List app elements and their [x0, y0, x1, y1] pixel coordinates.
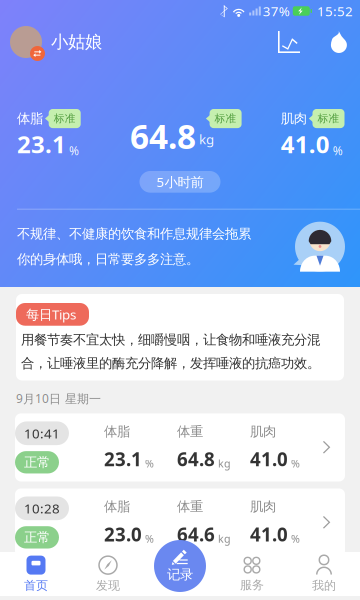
staticText: 标准	[215, 112, 237, 125]
staticText: 小姑娘	[51, 31, 102, 53]
button[interactable]: 数据趋势	[273, 26, 305, 58]
button[interactable]: 10:41	[0, 413, 360, 481]
staticText: 64.6	[177, 522, 215, 547]
staticText: kg	[218, 531, 231, 546]
staticText: 15:52	[317, 2, 353, 20]
staticText: 5小时前	[156, 173, 203, 191]
staticText: 23.1	[17, 128, 66, 160]
staticText: 记录	[167, 566, 193, 583]
button[interactable]: 我的	[288, 552, 360, 596]
staticText: 不规律、不健康的饮食和作息规律会拖累 你的身体哦，日常要多多注意。	[17, 226, 251, 267]
button[interactable]: 切换用户	[10, 26, 42, 58]
button[interactable]: 记录	[154, 540, 206, 592]
staticText: 41.0	[281, 128, 330, 160]
staticText: 正常	[24, 529, 50, 546]
staticText: 9月10日 星期一	[16, 390, 101, 406]
staticText: %	[69, 142, 79, 158]
staticText: %	[145, 456, 154, 471]
staticText: 肌肉	[281, 110, 307, 127]
staticText: 10:41	[24, 424, 60, 442]
staticText: 我的	[312, 578, 336, 593]
staticText: 体脂	[104, 498, 130, 515]
staticText: 肌肉	[250, 423, 276, 440]
staticText: %	[291, 531, 300, 546]
staticText: 服务	[240, 578, 264, 592]
staticText: kg	[218, 456, 231, 471]
staticText: 标准	[317, 112, 339, 125]
staticText: 10:28	[24, 499, 60, 517]
staticText: %	[145, 531, 154, 546]
staticText: 64.8	[130, 114, 196, 158]
staticText: %	[333, 142, 343, 158]
button[interactable]: 服务	[216, 552, 288, 596]
button[interactable]: 卡路里	[324, 25, 353, 58]
staticText: 41.0	[250, 447, 288, 471]
staticText: 正常	[24, 454, 50, 470]
button[interactable]: 首页	[0, 552, 72, 596]
staticText: 41.0	[250, 522, 288, 547]
button[interactable]: 5小时前	[139, 171, 220, 193]
staticText: 每日Tips	[26, 305, 76, 323]
staticText: 发现	[96, 578, 120, 593]
staticText: 体脂	[104, 423, 130, 440]
staticText: 体脂	[17, 110, 43, 127]
button[interactable]: 10:28	[0, 488, 360, 557]
staticText: 用餐节奏不宜太快，细嚼慢咽，让食物和唾液充分混合，让唾液里的酶充分降解，发挥唾液…	[21, 332, 320, 371]
staticText: 64.8	[177, 447, 215, 471]
staticText: 体重	[177, 423, 203, 440]
staticText: 肌肉	[250, 498, 276, 515]
staticText: 23.0	[104, 522, 142, 547]
staticText: 37%	[263, 2, 290, 20]
staticText: 体重	[177, 498, 203, 515]
staticText: kg	[199, 130, 214, 148]
staticText: 首页	[24, 578, 48, 593]
staticText: %	[291, 456, 300, 471]
staticText: 标准	[54, 112, 76, 125]
button[interactable]: 发现	[72, 552, 144, 596]
staticText: 23.1	[104, 447, 142, 471]
